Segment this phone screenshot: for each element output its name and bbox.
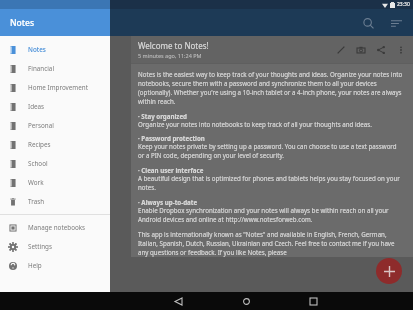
staticText: Manage notebooks — [28, 223, 86, 232]
staticText: Financial — [28, 64, 55, 73]
staticText: School — [28, 159, 48, 168]
button[interactable]: Share — [374, 43, 387, 56]
staticText: Welcome to Notes! — [138, 40, 209, 51]
button[interactable]: Trash — [0, 192, 110, 211]
staticText: Recipes — [28, 140, 51, 149]
staticText: · Password protection — [138, 134, 205, 142]
button[interactable]: Settings — [0, 237, 110, 256]
staticText: Help — [28, 261, 42, 270]
staticText: 5 minutes ago, 11:24 PM — [138, 52, 202, 59]
staticText: A beautiful design that is optimized for… — [138, 174, 404, 192]
button[interactable]: Search — [359, 14, 377, 32]
button[interactable]: Financial — [0, 59, 110, 78]
button[interactable]: Manage notebooks — [0, 218, 110, 237]
button[interactable]: Edit — [334, 43, 347, 56]
staticText: Notes — [10, 17, 35, 29]
button[interactable]: Recents — [305, 293, 321, 309]
button[interactable]: Recipes — [0, 135, 110, 154]
staticText: Personal — [28, 121, 54, 130]
button[interactable]: Ideas — [0, 97, 110, 116]
staticText: Organize your notes into notebooks to ke… — [138, 120, 372, 128]
button[interactable]: Work — [0, 173, 110, 192]
button[interactable]: More options — [394, 43, 407, 56]
staticText: Notes — [28, 45, 46, 54]
staticText: 23:30 — [397, 1, 410, 8]
staticText: · Stay organized — [138, 112, 188, 120]
staticText: Ideas — [28, 102, 45, 111]
staticText: Enable Dropbox synchronization and your … — [138, 206, 404, 224]
button[interactable]: Sort — [387, 14, 405, 32]
button[interactable]: Back — [170, 293, 186, 309]
button[interactable]: Camera — [354, 43, 367, 56]
staticText: Keep your notes private by setting up a … — [138, 142, 404, 160]
button[interactable]: New note — [376, 258, 402, 284]
staticText: Settings — [28, 242, 52, 251]
button[interactable]: Personal — [0, 116, 110, 135]
button[interactable]: Home Improvement — [0, 78, 110, 97]
staticText: This app is internationally known as "No… — [138, 230, 404, 257]
button[interactable]: School — [0, 154, 110, 173]
staticText: · Always up-to-date — [138, 198, 198, 206]
button[interactable]: Home — [238, 293, 254, 309]
button[interactable]: Notes — [0, 40, 110, 59]
button[interactable]: Help — [0, 256, 110, 275]
staticText: Trash — [28, 197, 45, 206]
staticText: Home Improvement — [28, 83, 88, 92]
staticText: · Clean user interface — [138, 166, 204, 174]
staticText: Work — [28, 178, 44, 187]
staticText: Notes is the easiest way to keep track o… — [138, 70, 404, 106]
